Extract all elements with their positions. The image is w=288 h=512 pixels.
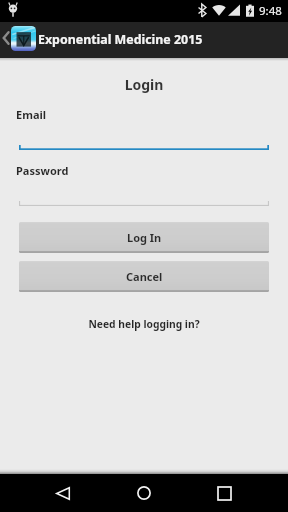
button[interactable]: Log In: [19, 222, 269, 253]
button[interactable]: Back: [40, 476, 86, 510]
button[interactable]: Need help logging in?: [0, 317, 288, 331]
button[interactable]: Cancel: [19, 261, 269, 292]
staticText: Password: [16, 163, 69, 178]
button[interactable]: Navigate up: [0, 20, 11, 56]
staticText: Exponential Medicine 2015: [38, 31, 203, 48]
staticText: Cancel: [126, 269, 163, 284]
staticText: 9:48: [259, 3, 282, 19]
staticText: Log In: [127, 230, 162, 245]
button[interactable]: Home: [121, 476, 167, 510]
button[interactable]: Recent apps: [201, 476, 247, 510]
staticText: Login: [0, 75, 288, 94]
staticText: Email: [16, 107, 47, 122]
